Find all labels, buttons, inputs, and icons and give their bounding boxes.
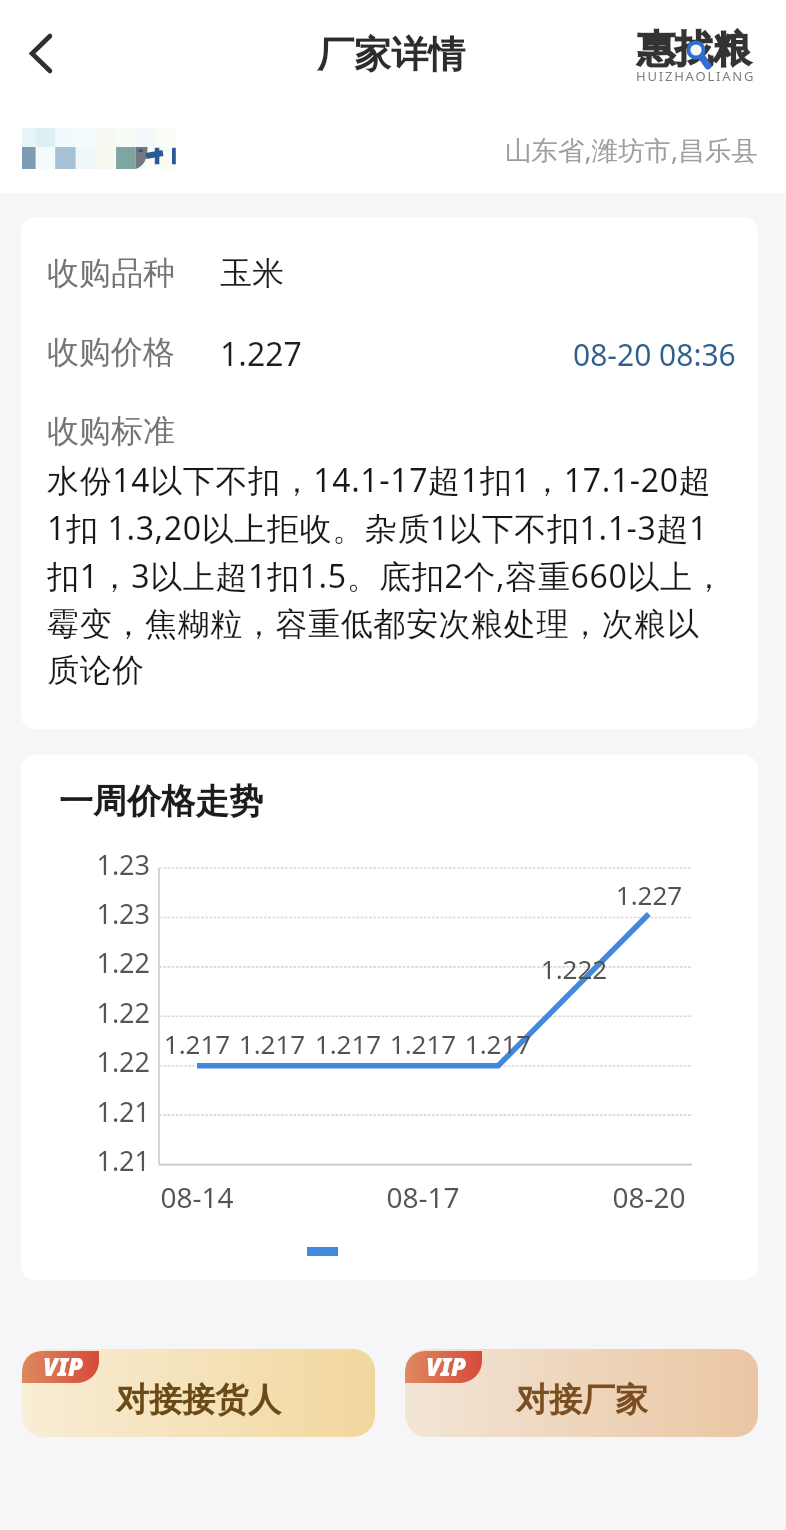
staticText: 对接接货人 (116, 1379, 281, 1421)
staticText: 一周价格走势 (59, 780, 263, 823)
staticText: 玉米 (220, 253, 284, 293)
staticText: 1.22 (31, 944, 150, 981)
button[interactable]: 价格走势图例 (292, 1235, 353, 1267)
button[interactable]: 厂家信息 山东省,潍坊市,昌乐县 (0, 105, 786, 193)
staticText: 1.217 (127, 1026, 267, 1061)
staticText: 08-20 (579, 1178, 719, 1216)
staticText: 山东省,潍坊市,昌乐县 (505, 132, 758, 168)
staticText: 1.227 (579, 877, 719, 912)
staticText: 1.227 (220, 332, 302, 376)
staticText: 1.21 (31, 1142, 150, 1179)
button[interactable]: 惠找粮 logo (636, 25, 766, 95)
staticText: 1.217 (278, 1026, 418, 1061)
staticText: 1.217 (353, 1026, 493, 1061)
staticText: VIP (426, 1351, 466, 1382)
button[interactable]: Back (0, 0, 86, 105)
staticText: 水份14以下不扣，14.1-17超1扣1，17.1-20超1扣 1.3,20以上… (47, 458, 726, 690)
staticText: 厂家详情 (317, 31, 465, 78)
staticText: 1.23 (31, 846, 150, 883)
staticText: 收购标准 (47, 411, 175, 451)
staticText: 1.23 (31, 895, 150, 932)
staticText: 08-20 08:36 (573, 334, 736, 375)
staticText: 对接厂家 (516, 1379, 648, 1421)
button[interactable]: VIP (405, 1349, 758, 1437)
staticText: 08-14 (127, 1178, 267, 1216)
staticText: 惠找粮 (637, 25, 751, 73)
staticText: 1.217 (428, 1026, 568, 1061)
button[interactable]: VIP (22, 1349, 375, 1437)
staticText: 08-17 (353, 1178, 493, 1216)
staticText: 1.217 (202, 1026, 342, 1061)
staticText: 收购品种 (47, 253, 175, 293)
staticText: VIP (43, 1351, 83, 1382)
staticText: 1.22 (31, 994, 150, 1031)
staticText: 收购价格 (47, 332, 175, 372)
staticText: 1.222 (504, 951, 644, 986)
staticText: HUIZHAOLIANG (636, 67, 756, 85)
staticText: 1.22 (31, 1043, 150, 1080)
staticText: 1.21 (31, 1093, 150, 1130)
